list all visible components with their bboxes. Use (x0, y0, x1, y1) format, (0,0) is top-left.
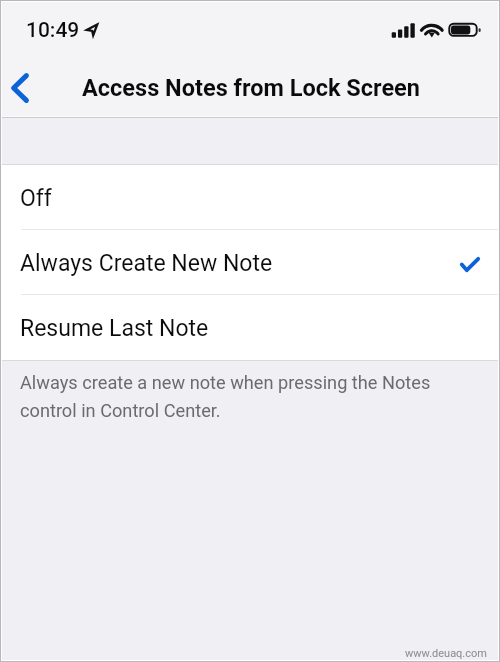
button[interactable]: Resume Last Note (0, 295, 500, 360)
staticText: www.deuaq.com (405, 647, 487, 660)
staticText: Always create a new note when pressing t… (20, 372, 445, 421)
button[interactable]: Off (0, 165, 500, 230)
button[interactable]: Always Create New Note (0, 230, 500, 295)
staticText: Access Notes from Lock Screen (82, 74, 420, 102)
staticText: 10:49 (26, 18, 80, 43)
staticText: Off (20, 185, 52, 212)
staticText: Resume Last Note (20, 315, 209, 342)
staticText: Always Create New Note (20, 250, 273, 277)
button[interactable]: Back (0, 63, 43, 113)
